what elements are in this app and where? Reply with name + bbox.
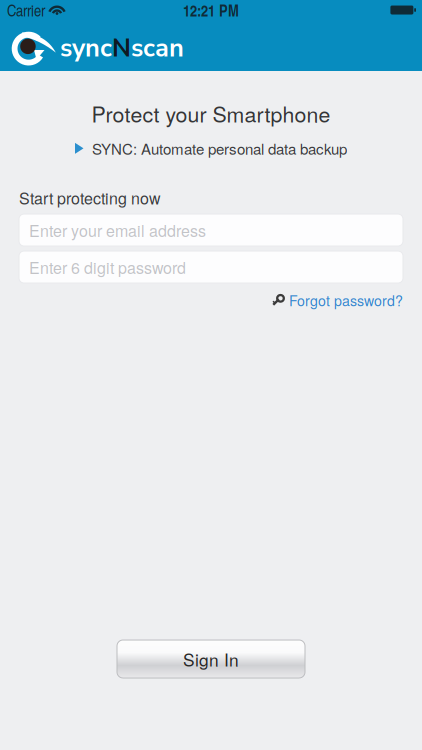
staticText: Start protecting now [19,186,161,209]
staticText: Sign In [183,647,239,671]
staticText: scan [131,31,184,66]
staticText: Forgot password? [289,290,403,310]
staticText: Enter 6 digit password [29,256,186,278]
staticText: Enter your email address [29,219,206,241]
staticText: SYNC: Automate personal data backup [92,137,347,159]
button[interactable]: Sign In [117,640,305,678]
staticText: N [112,31,131,66]
staticText: Carrier [7,0,45,21]
button[interactable]: Forgot password? [0,289,422,311]
staticText: sync [60,31,112,66]
staticText: Protect your Smartphone [91,98,330,128]
staticText: 12:21 PM [183,0,239,21]
